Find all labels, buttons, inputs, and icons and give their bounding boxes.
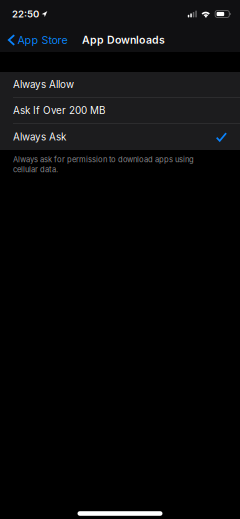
staticText: Always ask for permission to download ap… bbox=[13, 155, 194, 174]
button[interactable]: Ask If Over 200 MB bbox=[0, 98, 240, 123]
staticText: Ask If Over 200 MB bbox=[13, 104, 105, 116]
staticText: Always Ask bbox=[13, 131, 66, 143]
staticText: App Downloads bbox=[82, 34, 165, 46]
button[interactable]: Always Ask bbox=[0, 124, 240, 150]
button[interactable]: Always Allow bbox=[0, 72, 240, 97]
staticText: App Store bbox=[17, 33, 67, 46]
staticText: Always Allow bbox=[13, 78, 74, 90]
button[interactable]: App Store bbox=[0, 28, 73, 52]
staticText: 22:50 bbox=[12, 8, 39, 20]
